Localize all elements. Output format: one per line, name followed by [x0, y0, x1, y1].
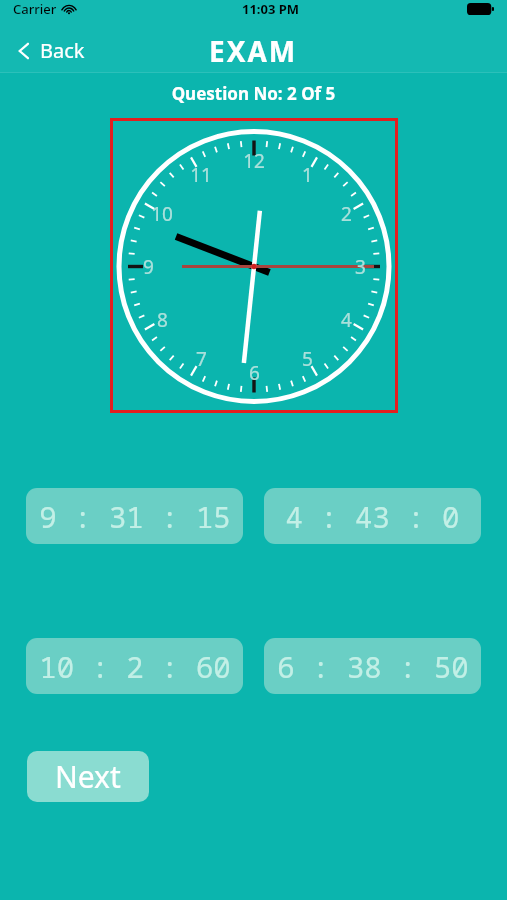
button[interactable]: Next — [27, 751, 149, 802]
staticText: 4 : 43 : 0 — [285, 497, 460, 536]
staticText: 11 — [190, 162, 212, 188]
staticText: 2 — [341, 201, 352, 227]
button[interactable]: Back — [8, 32, 92, 69]
staticText: 6 : 38 : 50 — [277, 647, 469, 686]
staticText: Next — [55, 756, 121, 797]
staticText: 3 — [355, 254, 366, 280]
staticText: Question No: 2 Of 5 — [0, 82, 507, 105]
staticText: 5 — [302, 346, 313, 372]
button[interactable]: 6 : 38 : 50 — [264, 638, 481, 694]
staticText: 10 — [151, 201, 173, 227]
button[interactable]: 10 : 2 : 60 — [26, 638, 243, 694]
staticText: Back — [40, 37, 85, 64]
staticText: 1 — [302, 162, 313, 188]
staticText: 10 : 2 : 60 — [39, 647, 231, 686]
staticText: 9 — [143, 254, 154, 280]
staticText: 9 : 31 : 15 — [39, 497, 231, 536]
button[interactable]: 4 : 43 : 0 — [264, 488, 481, 544]
staticText: 6 — [249, 360, 260, 386]
staticText: 12 — [243, 148, 265, 174]
staticText: 11:03 PM — [242, 0, 300, 18]
staticText: Carrier — [13, 0, 57, 18]
staticText: 8 — [157, 307, 168, 333]
staticText: 7 — [196, 346, 207, 372]
button[interactable]: 9 : 31 : 15 — [26, 488, 243, 544]
staticText: EXAM — [209, 32, 298, 70]
staticText: 4 — [341, 307, 352, 333]
